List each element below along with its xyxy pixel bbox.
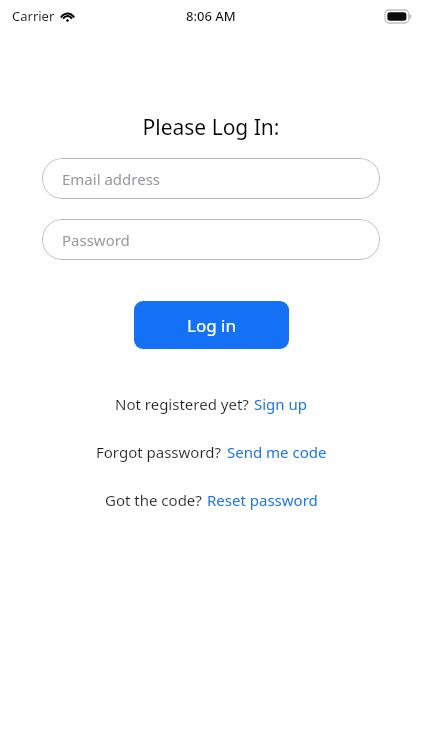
staticText: Please Log In: [0, 113, 422, 142]
button[interactable]: Email address [42, 158, 380, 199]
button[interactable]: Reset password [207, 490, 318, 510]
staticText: Log in [187, 314, 236, 337]
button[interactable]: Password [42, 219, 380, 260]
button[interactable]: Send me code [227, 442, 327, 462]
button[interactable]: Sign up [254, 394, 307, 414]
staticText: Forgot password? [96, 442, 222, 462]
staticText: Password [62, 230, 130, 250]
staticText: Reset password [207, 490, 318, 510]
staticText: 8:06 AM [186, 7, 236, 25]
staticText: Sign up [254, 394, 307, 414]
staticText: Carrier [12, 7, 55, 25]
button[interactable]: Log in [134, 301, 289, 349]
staticText: Email address [62, 169, 161, 189]
staticText: Not registered yet? [115, 394, 249, 414]
staticText: Send me code [227, 442, 327, 462]
staticText: Got the code? [105, 490, 202, 510]
